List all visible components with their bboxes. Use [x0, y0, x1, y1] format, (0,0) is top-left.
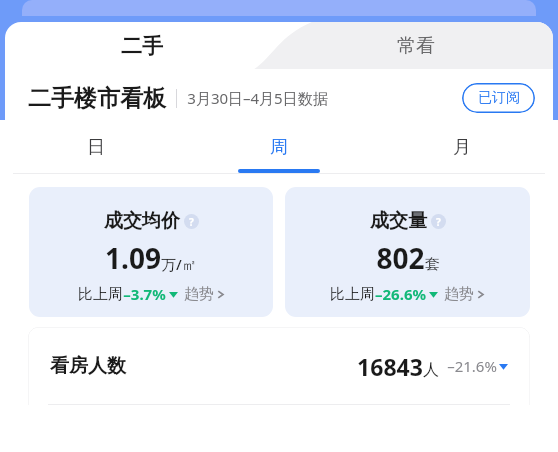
- staticText: 802: [376, 239, 425, 277]
- staticText: 日: [87, 136, 105, 159]
- staticText: 看房人数: [50, 354, 126, 378]
- staticText: 周: [270, 136, 288, 159]
- staticText: 趋势: [444, 285, 474, 304]
- button[interactable]: 月: [370, 127, 553, 174]
- other: 说明: [184, 214, 199, 229]
- staticText: 已订阅: [478, 89, 520, 107]
- staticText: 比上周: [330, 285, 375, 304]
- button[interactable]: 成交均价: [29, 187, 273, 317]
- staticText: 成交均价: [104, 209, 180, 233]
- button[interactable]: 看房人数: [28, 327, 530, 405]
- staticText: ?: [436, 215, 441, 229]
- other: 说明: [431, 214, 446, 229]
- staticText: 万/㎡: [161, 254, 197, 274]
- button[interactable]: 成交量: [285, 187, 530, 317]
- staticText: 人: [423, 360, 439, 380]
- staticText: 16843: [357, 351, 423, 382]
- staticText: –3.7%: [123, 284, 166, 304]
- staticText: –21.6%: [447, 356, 497, 376]
- button[interactable]: 日: [5, 127, 187, 174]
- staticText: 月: [453, 136, 471, 159]
- staticText: 比上周: [78, 285, 123, 304]
- staticText: 常看: [397, 34, 435, 58]
- button[interactable]: 已订阅: [462, 83, 535, 113]
- staticText: 1.09: [105, 239, 161, 277]
- other: 查看趋势: [216, 290, 225, 299]
- button[interactable]: 二手: [5, 22, 279, 69]
- staticText: 趋势: [184, 285, 214, 304]
- staticText: 二手楼市看板: [28, 84, 166, 113]
- staticText: 二手: [121, 33, 163, 59]
- other: 查看趋势: [476, 290, 485, 299]
- staticText: –26.6%: [375, 284, 426, 304]
- staticText: 成交量: [370, 209, 427, 233]
- staticText: 套: [425, 255, 440, 274]
- button[interactable]: 周: [187, 127, 370, 174]
- staticText: 3月30日–4月5日数据: [187, 88, 328, 108]
- staticText: ?: [189, 215, 194, 229]
- button[interactable]: 常看: [279, 22, 553, 69]
